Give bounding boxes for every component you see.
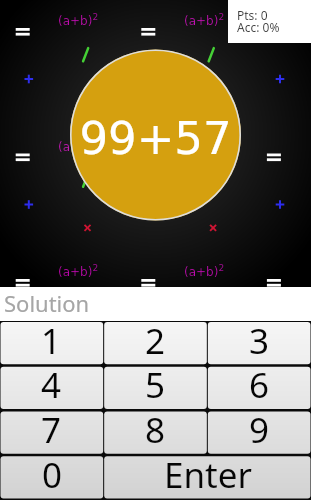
staticText: Solution xyxy=(4,288,90,318)
staticText: 0 xyxy=(42,451,63,496)
staticText: (a+b)2 xyxy=(184,138,225,153)
button[interactable]: 2 xyxy=(103,321,207,365)
staticText: (a+b)2 xyxy=(58,138,99,153)
button[interactable]: 5 xyxy=(103,365,207,410)
staticText: 1 xyxy=(41,317,62,361)
button[interactable]: Solution xyxy=(0,287,311,321)
staticText: 4 xyxy=(41,361,62,406)
staticText: (a+b)2 xyxy=(58,12,99,27)
button[interactable]: 9 xyxy=(207,410,311,455)
staticText: 99+57 xyxy=(79,112,232,164)
button[interactable]: 3 xyxy=(207,321,311,365)
staticText: 3 xyxy=(249,317,270,361)
button[interactable]: 1 xyxy=(0,321,103,365)
staticText: Enter xyxy=(164,451,252,496)
staticText: 2 xyxy=(145,317,166,361)
staticText: 6 xyxy=(249,361,270,406)
button[interactable]: 0 xyxy=(0,455,104,500)
button[interactable]: 4 xyxy=(0,365,103,410)
button[interactable]: 6 xyxy=(207,365,311,410)
staticText: Acc: 0% xyxy=(237,19,280,35)
staticText: 5 xyxy=(145,361,166,406)
staticText: 8 xyxy=(145,406,166,451)
button[interactable]: Enter xyxy=(104,455,311,500)
staticText: Pts: 0 xyxy=(237,7,268,23)
staticText: (a+b)2 xyxy=(58,263,99,278)
staticText: 7 xyxy=(41,406,62,451)
button[interactable]: 8 xyxy=(103,410,207,455)
staticText: (a+b)2 xyxy=(184,12,225,27)
staticText: (a+b)2 xyxy=(184,263,225,278)
button[interactable]: 7 xyxy=(0,410,103,455)
staticText: 9 xyxy=(249,406,270,451)
